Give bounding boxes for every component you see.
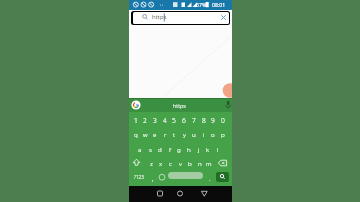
button[interactable]: d <box>155 142 165 156</box>
button[interactable]: https <box>164 99 194 111</box>
staticText: u <box>192 130 196 138</box>
button[interactable] <box>216 172 229 182</box>
staticText: k <box>206 145 210 153</box>
staticText: j <box>198 145 200 153</box>
staticText: z <box>150 159 153 167</box>
button[interactable]: 6 <box>179 113 189 127</box>
staticText: s <box>149 145 152 153</box>
button[interactable]: w <box>140 127 150 141</box>
button[interactable] <box>219 13 228 22</box>
button[interactable]: 4 <box>160 113 170 127</box>
button[interactable]: n <box>195 156 205 170</box>
button[interactable]: 5 <box>169 113 179 127</box>
staticText: , <box>152 174 154 183</box>
staticText: w <box>143 130 148 138</box>
button[interactable]: p <box>218 127 228 141</box>
staticText: e <box>153 130 157 138</box>
button[interactable] <box>174 187 186 200</box>
button[interactable] <box>157 171 167 183</box>
staticText: a <box>138 145 142 153</box>
button[interactable]: y <box>179 127 189 141</box>
staticText: . <box>209 174 211 183</box>
button[interactable]: 8 <box>199 113 209 127</box>
staticText: 6 <box>182 116 186 125</box>
button[interactable]: q <box>131 127 141 141</box>
button[interactable]: . <box>206 171 213 185</box>
staticText: 3 <box>153 116 157 125</box>
button[interactable]: , <box>149 171 156 185</box>
button[interactable]: 2 <box>140 113 150 127</box>
button[interactable]: 9 <box>208 113 218 127</box>
staticText: https <box>152 13 167 21</box>
button[interactable]: 7 <box>189 113 199 127</box>
staticText: 0 <box>221 116 225 125</box>
button[interactable] <box>131 100 141 110</box>
button[interactable]: o <box>208 127 218 141</box>
button[interactable]: f <box>165 142 175 156</box>
button[interactable] <box>131 156 142 170</box>
button[interactable]: u <box>189 127 199 141</box>
staticText: 5 <box>172 116 176 125</box>
staticText: 8 <box>202 116 206 125</box>
button[interactable]: h <box>184 142 194 156</box>
button[interactable]: s <box>145 142 155 156</box>
staticText: t <box>173 130 176 138</box>
button[interactable]: 0 <box>218 113 228 127</box>
staticText: n <box>198 159 202 167</box>
staticText: 4 <box>163 116 167 125</box>
button[interactable] <box>168 172 203 179</box>
staticText: o <box>211 130 215 138</box>
button[interactable]: ?123 <box>132 170 146 184</box>
button[interactable] <box>223 100 232 110</box>
staticText: 08:01 <box>212 1 226 8</box>
staticText: ?123 <box>134 174 144 180</box>
staticText: l <box>217 145 219 153</box>
button[interactable]: j <box>194 142 204 156</box>
button[interactable]: e <box>150 127 160 141</box>
button[interactable]: a <box>135 142 145 156</box>
staticText: 57% <box>196 1 207 8</box>
staticText: r <box>164 130 167 138</box>
button[interactable]: i <box>199 127 209 141</box>
button[interactable]: t <box>169 127 179 141</box>
button[interactable] <box>131 11 230 25</box>
button[interactable]: 3 <box>150 113 160 127</box>
button[interactable]: c <box>165 156 175 170</box>
button[interactable]: b <box>185 156 195 170</box>
button[interactable] <box>198 187 211 200</box>
button[interactable]: k <box>203 142 213 156</box>
button[interactable] <box>217 156 229 170</box>
button[interactable]: x <box>156 156 166 170</box>
staticText: 1 <box>134 116 138 125</box>
button[interactable]: z <box>146 156 156 170</box>
staticText: g <box>177 145 181 153</box>
staticText: https <box>173 102 186 109</box>
staticText: y <box>183 130 186 138</box>
staticText: m <box>206 159 212 167</box>
button[interactable]: g <box>174 142 184 156</box>
staticText: x <box>159 159 163 167</box>
staticText: i <box>203 130 205 138</box>
button[interactable] <box>154 187 166 200</box>
staticText: q <box>134 130 138 138</box>
staticText: d <box>158 145 162 153</box>
button[interactable]: l <box>213 142 223 156</box>
staticText: b <box>188 159 192 167</box>
button[interactable]: r <box>160 127 170 141</box>
button[interactable]: 1 <box>131 113 141 127</box>
staticText: 2 <box>143 116 147 125</box>
staticText: f <box>169 145 171 153</box>
staticText: c <box>169 159 172 167</box>
staticText: 7 <box>192 116 196 125</box>
staticText: p <box>221 130 225 138</box>
staticText: 9 <box>211 116 215 125</box>
staticText: h <box>187 145 191 153</box>
button[interactable]: v <box>175 156 185 170</box>
staticText: v <box>179 159 182 167</box>
button[interactable]: m <box>204 156 214 170</box>
